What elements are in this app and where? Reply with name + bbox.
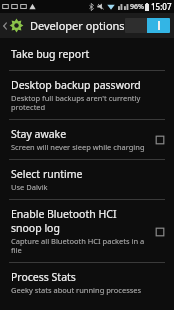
button[interactable]: Select runtime (0, 160, 174, 199)
button[interactable]: Developer options on/off (125, 18, 170, 33)
button[interactable]: Desktop backup password (0, 71, 174, 119)
staticText: Use Dalvik (11, 182, 48, 192)
button[interactable]: Take bug report (0, 38, 174, 70)
staticText: 96% (130, 2, 144, 12)
staticText: Screen will never sleep while charging (11, 142, 145, 152)
button[interactable]: Process Stats (0, 263, 174, 302)
button[interactable]: Enable Bluetooth HCI snoop log (0, 200, 174, 262)
button[interactable]: Stay awake (0, 120, 174, 159)
staticText: Process Stats (11, 270, 76, 284)
staticText: Geeky stats about running processes (11, 285, 142, 295)
staticText: Enable Bluetooth HCI snoop log (11, 207, 147, 235)
staticText: Desktop full backups aren't currently pr… (11, 93, 164, 112)
staticText: Stay awake (11, 127, 67, 141)
staticText: Take bug report (11, 47, 90, 61)
staticText: 15:07 (151, 1, 172, 12)
staticText: Developer options (30, 18, 125, 33)
staticText: Capture all Bluetooth HCI packets in a f… (11, 236, 145, 255)
staticText: Desktop backup password (11, 78, 141, 92)
button[interactable]: Navigate up (0, 18, 26, 33)
staticText: Select runtime (11, 167, 83, 181)
